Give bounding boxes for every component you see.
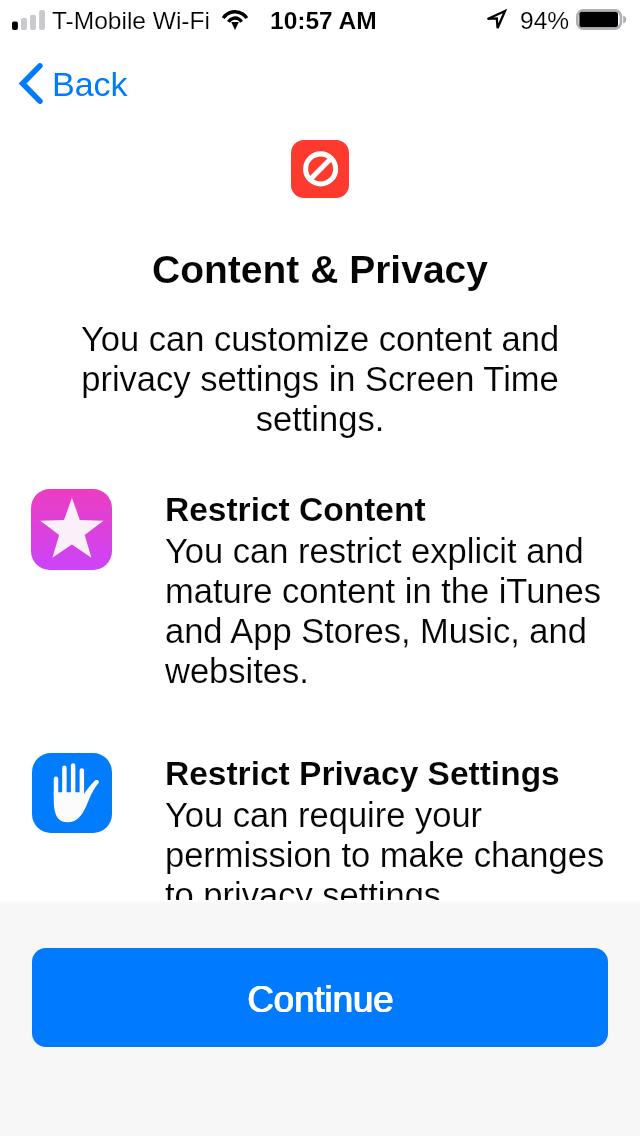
staticText: You can require your permission to make … [165,796,615,914]
button[interactable]: Back [0,58,146,113]
staticText: You can customize content and privacy se… [58,320,582,438]
staticText: 10:57 AM [270,7,377,34]
staticText: Continue [248,979,395,1020]
staticText: Content & Privacy [0,248,640,292]
staticText: 94% [520,7,570,34]
staticText: Restrict Privacy Settings [165,755,560,792]
staticText: Continue [247,979,394,1020]
staticText: Restrict Content [165,491,426,528]
staticText: You can restrict explicit and mature con… [165,532,615,690]
staticText: Back [52,65,128,103]
button[interactable]: Continue [32,948,608,1047]
staticText: T-Mobile Wi-Fi [52,7,210,34]
